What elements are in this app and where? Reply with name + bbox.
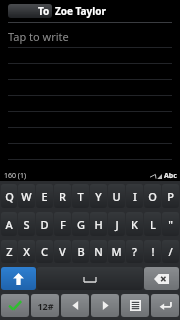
button[interactable]: Z	[1, 240, 17, 263]
button[interactable]: Left	[61, 294, 89, 317]
staticText: Z	[6, 244, 13, 259]
staticText: S	[23, 217, 30, 232]
staticText: O	[148, 189, 157, 204]
staticText: E	[41, 189, 48, 204]
staticText: Zoe Taylor	[55, 4, 106, 18]
button[interactable]: !	[144, 240, 161, 263]
staticText: Abc	[164, 171, 177, 181]
button[interactable]: Space	[37, 267, 143, 290]
button[interactable]: Y	[90, 184, 107, 208]
staticText: A	[5, 217, 13, 232]
staticText: ?	[132, 244, 137, 259]
staticText: W	[21, 189, 32, 204]
button[interactable]: Right	[91, 294, 119, 317]
staticText: To	[38, 4, 50, 18]
staticText: R	[59, 189, 66, 204]
staticText: U	[112, 189, 121, 204]
button[interactable]: E	[36, 184, 53, 208]
button[interactable]: O	[144, 184, 161, 208]
button[interactable]: T	[72, 184, 89, 208]
staticText: P	[167, 189, 174, 204]
button[interactable]: H	[90, 212, 107, 236]
staticText: K	[131, 217, 138, 232]
button[interactable]: R	[54, 184, 71, 208]
button[interactable]: C	[36, 240, 53, 263]
button[interactable]: S	[18, 212, 35, 236]
staticText: M	[111, 244, 122, 259]
staticText: G	[77, 217, 85, 232]
button[interactable]: D	[36, 212, 53, 236]
button[interactable]: G	[72, 212, 89, 236]
button[interactable]: B	[72, 240, 89, 263]
staticText: 12#	[37, 300, 54, 312]
staticText: 160 (1)	[4, 171, 27, 181]
staticText: F	[60, 217, 66, 232]
button[interactable]: F	[54, 212, 71, 236]
button[interactable]: W	[18, 184, 35, 208]
button[interactable]: A	[1, 212, 17, 236]
staticText: I	[133, 189, 137, 204]
button[interactable]: Send	[1, 294, 29, 317]
button[interactable]: L	[144, 212, 161, 236]
button[interactable]: V	[54, 240, 71, 263]
staticText: L	[150, 217, 156, 232]
staticText: Q	[5, 189, 14, 204]
button[interactable]: Backspace	[144, 267, 179, 290]
button[interactable]: 12#	[31, 294, 59, 317]
staticText: J	[115, 217, 119, 232]
button[interactable]: N	[90, 240, 107, 263]
staticText: X	[23, 244, 30, 259]
staticText: /	[168, 244, 173, 259]
staticText: C	[41, 244, 48, 259]
button[interactable]: "	[162, 212, 179, 236]
button[interactable]: ?	[126, 240, 143, 263]
staticText: V	[59, 244, 66, 259]
button[interactable]: Q	[1, 184, 17, 208]
staticText: D	[40, 217, 49, 232]
button[interactable]: U	[108, 184, 125, 208]
staticText: "	[168, 217, 173, 232]
button[interactable]: J	[108, 212, 125, 236]
button[interactable]: Menu	[121, 294, 149, 317]
staticText: B	[77, 244, 85, 259]
button[interactable]: I	[126, 184, 143, 208]
button[interactable]: Shift	[1, 267, 36, 290]
staticText: Y	[95, 189, 102, 204]
button[interactable]: P	[162, 184, 179, 208]
staticText: !	[151, 244, 155, 259]
button[interactable]: M	[108, 240, 125, 263]
button[interactable]: X	[18, 240, 35, 263]
button[interactable]: Tap to write	[8, 29, 69, 44]
button[interactable]: /	[162, 240, 179, 263]
staticText: N	[94, 244, 103, 259]
staticText: H	[94, 217, 103, 232]
button[interactable]: K	[126, 212, 143, 236]
staticText: T	[77, 189, 84, 204]
button[interactable]: To	[8, 4, 52, 18]
button[interactable]: Enter	[151, 294, 179, 317]
